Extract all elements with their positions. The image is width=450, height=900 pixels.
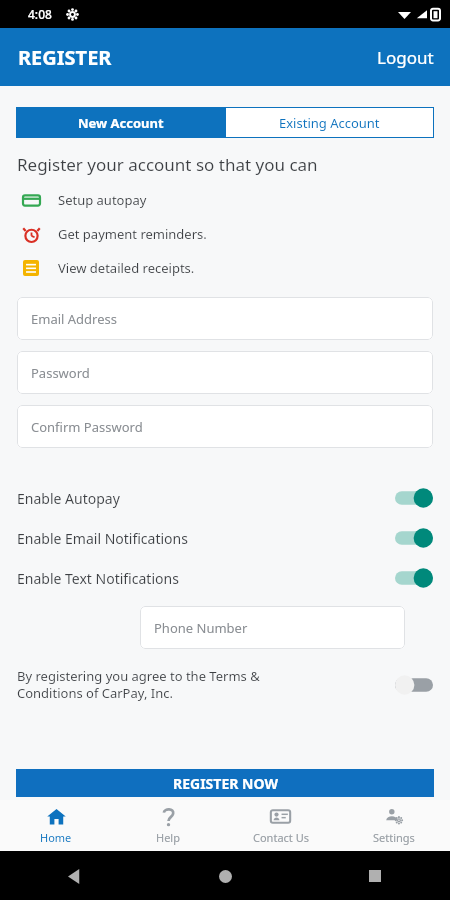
staticText: Password <box>31 364 90 382</box>
staticText: Get payment reminders. <box>58 225 207 243</box>
staticText: Contact Us <box>253 830 309 845</box>
button[interactable]: New Account <box>16 107 225 138</box>
button[interactable]: Existing Account <box>225 107 434 138</box>
button[interactable]: Help <box>112 800 224 851</box>
button[interactable]: Enable Text Notifications <box>0 558 450 598</box>
button[interactable]: REGISTER NOW <box>16 769 434 797</box>
staticText: Logout <box>377 46 434 69</box>
button[interactable]: Contact Us <box>224 800 337 851</box>
button[interactable]: Enable Autopay <box>0 478 450 518</box>
staticText: By registering you agree to the Terms & … <box>17 667 395 702</box>
button[interactable]: By registering you agree to the Terms & … <box>0 667 450 702</box>
button[interactable]: Logout <box>361 36 450 79</box>
button[interactable]: Settings <box>337 800 450 851</box>
button[interactable]: Home <box>0 800 112 851</box>
staticText: Enable Autopay <box>17 489 120 508</box>
staticText: Setup autopay <box>58 191 147 209</box>
button[interactable]: Recent apps <box>355 856 395 896</box>
button[interactable]: Confirm Password <box>17 405 433 448</box>
staticText: Register your account so that you can <box>17 153 318 176</box>
staticText: Settings <box>373 830 415 845</box>
button[interactable]: Password <box>17 351 433 394</box>
staticText: Phone Number <box>154 619 248 637</box>
staticText: Help <box>156 830 180 845</box>
staticText: REGISTER <box>18 44 112 71</box>
staticText: Home <box>40 830 72 845</box>
button[interactable]: Enable Email Notifications <box>0 518 450 558</box>
button[interactable]: Email Address <box>17 297 433 340</box>
staticText: View detailed receipts. <box>58 259 195 277</box>
staticText: 4:08 <box>28 6 52 22</box>
staticText: Existing Account <box>279 114 380 132</box>
staticText: Enable Text Notifications <box>17 569 179 588</box>
staticText: Email Address <box>31 310 117 328</box>
staticText: Enable Email Notifications <box>17 529 188 548</box>
button[interactable]: Phone Number <box>140 606 405 649</box>
staticText: Confirm Password <box>31 418 143 436</box>
button[interactable]: Back <box>55 856 95 896</box>
staticText: New Account <box>78 114 164 132</box>
staticText: REGISTER NOW <box>173 774 278 793</box>
button[interactable]: Home <box>205 856 245 896</box>
